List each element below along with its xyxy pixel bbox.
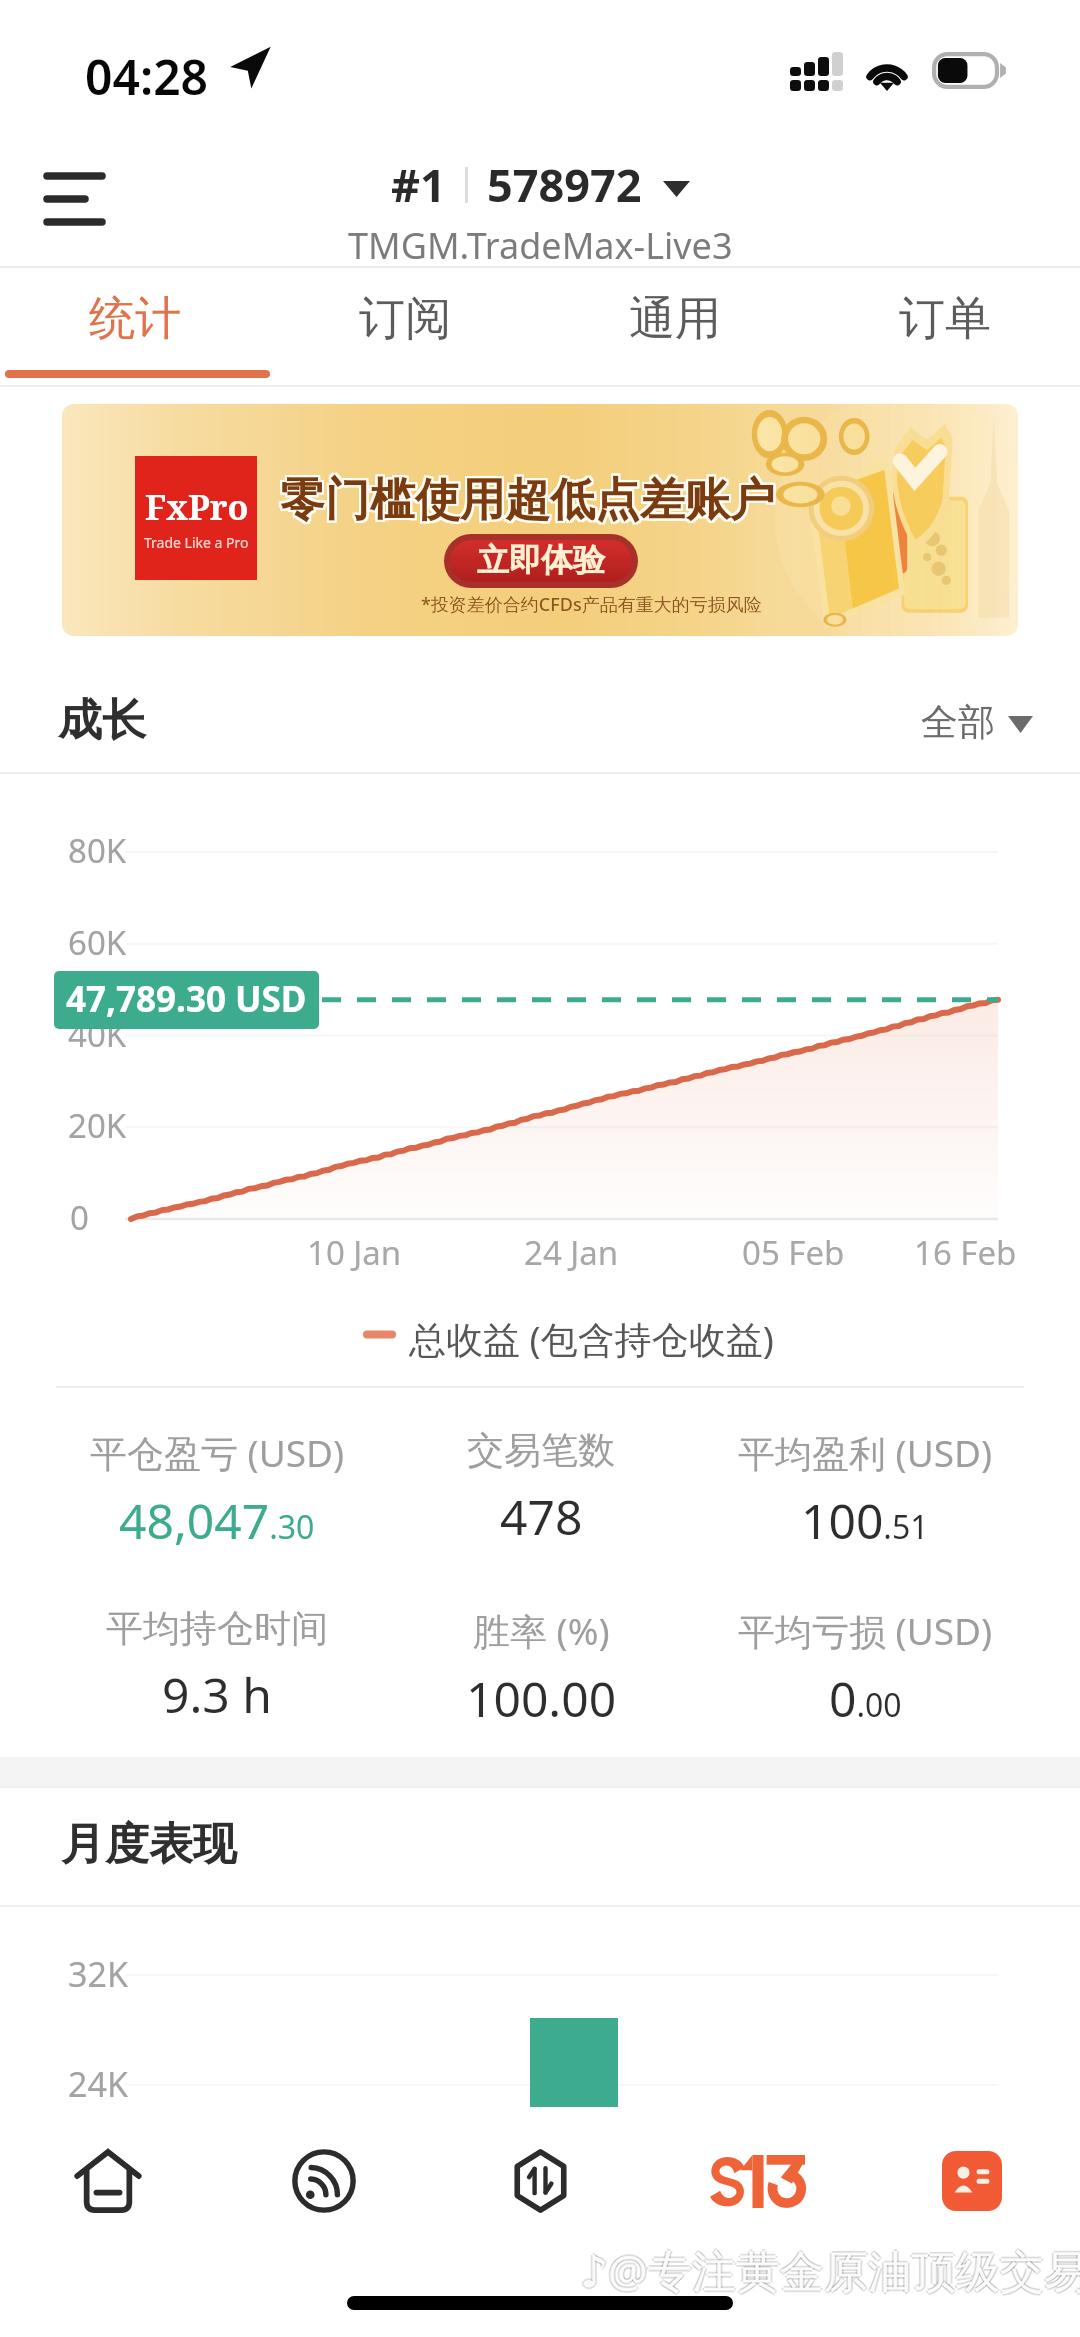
button[interactable]: #1 [338, 152, 743, 272]
staticText: 0 [70, 1195, 89, 1240]
staticText: 100.51 [801, 1488, 929, 1553]
staticText: 零门槛使用超低点差账户 [282, 472, 777, 529]
staticText: 订阅 [359, 290, 451, 348]
staticText: ♪@专注黄金原油顶级交易员 [582, 2240, 1080, 2300]
staticText: ♪@专注黄金原油顶级交易员 [578, 2240, 1080, 2300]
staticText: 05 Feb [742, 1230, 845, 1275]
staticText: ♪@专注黄金原油顶级交易员 [580, 2242, 1080, 2302]
button[interactable]: 全部 [921, 699, 1033, 746]
staticText: 平均亏损 (USD) [738, 1605, 993, 1656]
staticText: 80K [68, 828, 127, 873]
staticText: 平均持仓时间 [106, 1605, 328, 1652]
staticText: ♪@专注黄金原油顶级交易员 [580, 2240, 1080, 2300]
staticText: 交易笔数 [467, 1427, 615, 1474]
button[interactable]: Profile [864, 2107, 1080, 2255]
staticText: 平均盈利 (USD) [738, 1427, 993, 1478]
staticText: 通用 [629, 290, 721, 348]
staticText: 总收益 (包含持仓收益) [409, 1313, 774, 1364]
staticText: 9.3 h [162, 1662, 272, 1727]
staticText: #1 [391, 154, 446, 215]
staticText: 立即体验 [477, 540, 605, 580]
button[interactable]: Trade [432, 2107, 648, 2255]
staticText: 成长 [58, 693, 146, 748]
staticText: 478 [500, 1484, 583, 1549]
button[interactable]: Signals [216, 2107, 432, 2255]
staticText: 全部 [921, 699, 995, 746]
staticText: 578972 [487, 154, 642, 215]
button[interactable]: 立即体验 [444, 534, 638, 588]
staticText: 零门槛使用超低点差账户 [278, 472, 773, 529]
staticText: 零门槛使用超低点差账户 [280, 470, 775, 527]
staticText: 60K [68, 920, 127, 965]
button[interactable]: S13 [648, 2107, 864, 2255]
staticText: 零门槛使用超低点差账户 [278, 474, 773, 531]
staticText: 零门槛使用超低点差账户 [278, 470, 773, 527]
staticText: 订单 [899, 290, 991, 348]
staticText: 平仓盈亏 (USD) [90, 1427, 345, 1478]
staticText: Trade Like a Pro [144, 533, 249, 552]
staticText: 16 Feb [914, 1230, 1017, 1275]
staticText: 零门槛使用超低点差账户 [280, 472, 775, 529]
staticText: 32K [68, 1951, 128, 1997]
staticText: 20K [68, 1103, 127, 1148]
button[interactable]: FxPro [62, 404, 1018, 636]
staticText: *投资差价合约CFDs产品有重大的亏损风险 [421, 592, 762, 617]
button[interactable]: Home [0, 2107, 216, 2255]
staticText: 24K [68, 2061, 128, 2107]
button[interactable]: 订单 [810, 268, 1080, 386]
staticText: 40K [68, 1012, 127, 1057]
staticText: 零门槛使用超低点差账户 [282, 470, 777, 527]
staticText: 47,789.30 USD [66, 975, 307, 1023]
staticText: 0.00 [829, 1666, 902, 1731]
staticText: 100.00 [466, 1666, 617, 1731]
staticText: 胜率 (%) [473, 1605, 610, 1656]
staticText: TMGM.TradeMax-Live3 [348, 221, 733, 270]
staticText: 零门槛使用超低点差账户 [280, 474, 775, 531]
button[interactable]: 通用 [540, 268, 810, 386]
staticText: 04:28 [85, 44, 209, 109]
staticText: 10 Jan [307, 1230, 402, 1275]
staticText: 统计 [89, 290, 181, 348]
staticText: 零门槛使用超低点差账户 [282, 474, 777, 531]
staticText: 24 Jan [524, 1230, 619, 1275]
button[interactable]: Menu [30, 152, 120, 246]
button[interactable]: 订阅 [270, 268, 540, 386]
staticText: ♪@专注黄金原油顶级交易员 [580, 2238, 1080, 2298]
staticText: FxPro [145, 484, 249, 530]
staticText: 月度表现 [61, 1817, 237, 1872]
button[interactable]: 统计 [0, 268, 270, 386]
staticText: 48,047.30 [119, 1488, 315, 1553]
